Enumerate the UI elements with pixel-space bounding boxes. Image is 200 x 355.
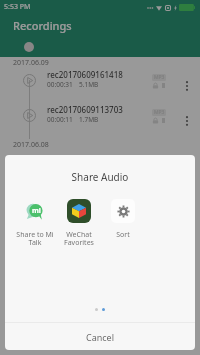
staticText: 2017.06.09: [13, 58, 49, 68]
button[interactable]: Play: [23, 74, 36, 87]
button[interactable]: Play: [0, 104, 200, 139]
staticText: mi: [32, 206, 41, 216]
button[interactable]: Cancel: [5, 323, 195, 350]
staticText: 1.7MB: [79, 115, 99, 124]
button[interactable]: Play: [0, 69, 200, 104]
staticText: Recordings: [13, 18, 72, 33]
staticText: Share Audio: [5, 170, 195, 184]
staticText: rec20170609113703: [47, 104, 123, 115]
button[interactable]: WeChat Favorites: [57, 198, 101, 247]
staticText: 2017.06.08: [13, 140, 49, 150]
button[interactable]: More options: [181, 112, 192, 130]
staticText: rec20170609161418: [47, 69, 123, 80]
staticText: Share to Mi Talk: [16, 230, 54, 247]
staticText: Cancel: [86, 331, 115, 343]
button[interactable]: mi: [13, 198, 57, 247]
staticText: Sort: [116, 230, 130, 240]
staticText: 5:53 PM: [4, 2, 31, 12]
button[interactable]: More options: [181, 77, 192, 95]
button[interactable]: Record: [24, 42, 34, 52]
button[interactable]: Play: [23, 109, 36, 122]
staticText: 5.1MB: [79, 80, 99, 89]
staticText: 00:00:11: [47, 115, 73, 124]
button[interactable]: Sort: [101, 198, 145, 240]
staticText: WeChat Favorites: [64, 230, 94, 247]
staticText: MP3: [154, 74, 165, 81]
staticText: MP3: [154, 109, 165, 116]
staticText: 00:00:31: [47, 80, 73, 89]
